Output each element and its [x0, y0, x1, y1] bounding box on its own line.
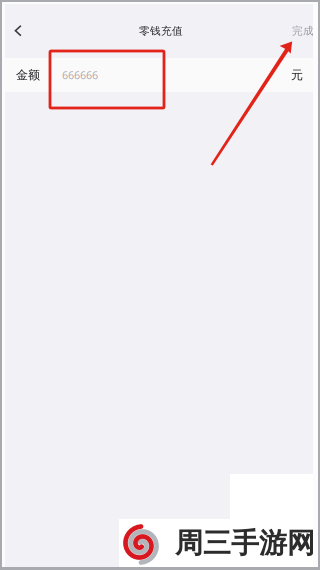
staticText: 666666	[62, 68, 98, 82]
staticText: 完成	[292, 24, 314, 37]
staticText: 周三手游网	[175, 526, 315, 560]
staticText: 零钱充值	[139, 24, 183, 37]
staticText: 金额	[16, 68, 40, 82]
staticText: 元	[291, 68, 303, 82]
button[interactable]: Back	[2, 16, 34, 46]
button[interactable]: 金额	[16, 58, 303, 92]
button[interactable]: 完成	[285, 18, 320, 44]
